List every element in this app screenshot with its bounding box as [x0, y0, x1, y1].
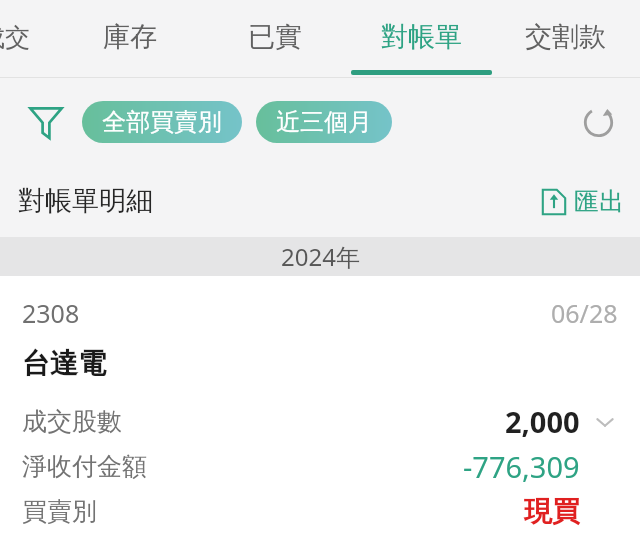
staticText: 成交股數	[22, 406, 122, 437]
staticText: 買賣別	[22, 496, 97, 527]
staticText: 已實	[248, 20, 302, 54]
button[interactable]: 交割款	[490, 0, 640, 74]
staticText: 2,000	[505, 402, 580, 441]
staticText: -776,309	[463, 447, 580, 486]
button[interactable]: 成交	[0, 0, 34, 74]
staticText: 匯出	[574, 186, 624, 217]
button[interactable]: 匯出	[540, 186, 624, 217]
button[interactable]: Filter	[14, 90, 78, 154]
staticText: 2024年	[281, 240, 360, 273]
staticText: 對帳單明細	[18, 184, 153, 218]
staticText: 近三個月	[276, 107, 372, 137]
staticText: 06/28	[551, 296, 618, 330]
staticText: 淨收付金額	[22, 451, 147, 482]
staticText: 現買	[524, 494, 580, 529]
button[interactable]: 對帳單	[346, 0, 496, 74]
button[interactable]: 2308	[0, 276, 640, 534]
staticText: 交割款	[525, 20, 606, 54]
button[interactable]: 庫存	[55, 0, 205, 74]
staticText: 成交	[0, 22, 30, 53]
staticText: 2308	[22, 296, 80, 330]
button[interactable]: 全部買賣別	[82, 101, 242, 143]
staticText: 台達電	[22, 346, 106, 381]
button[interactable]: 已實	[200, 0, 350, 74]
staticText: 全部買賣別	[102, 107, 222, 137]
staticText: 對帳單	[381, 20, 462, 54]
button[interactable]: Refresh	[568, 92, 628, 152]
button[interactable]: 近三個月	[256, 101, 392, 143]
staticText: 庫存	[103, 20, 157, 54]
